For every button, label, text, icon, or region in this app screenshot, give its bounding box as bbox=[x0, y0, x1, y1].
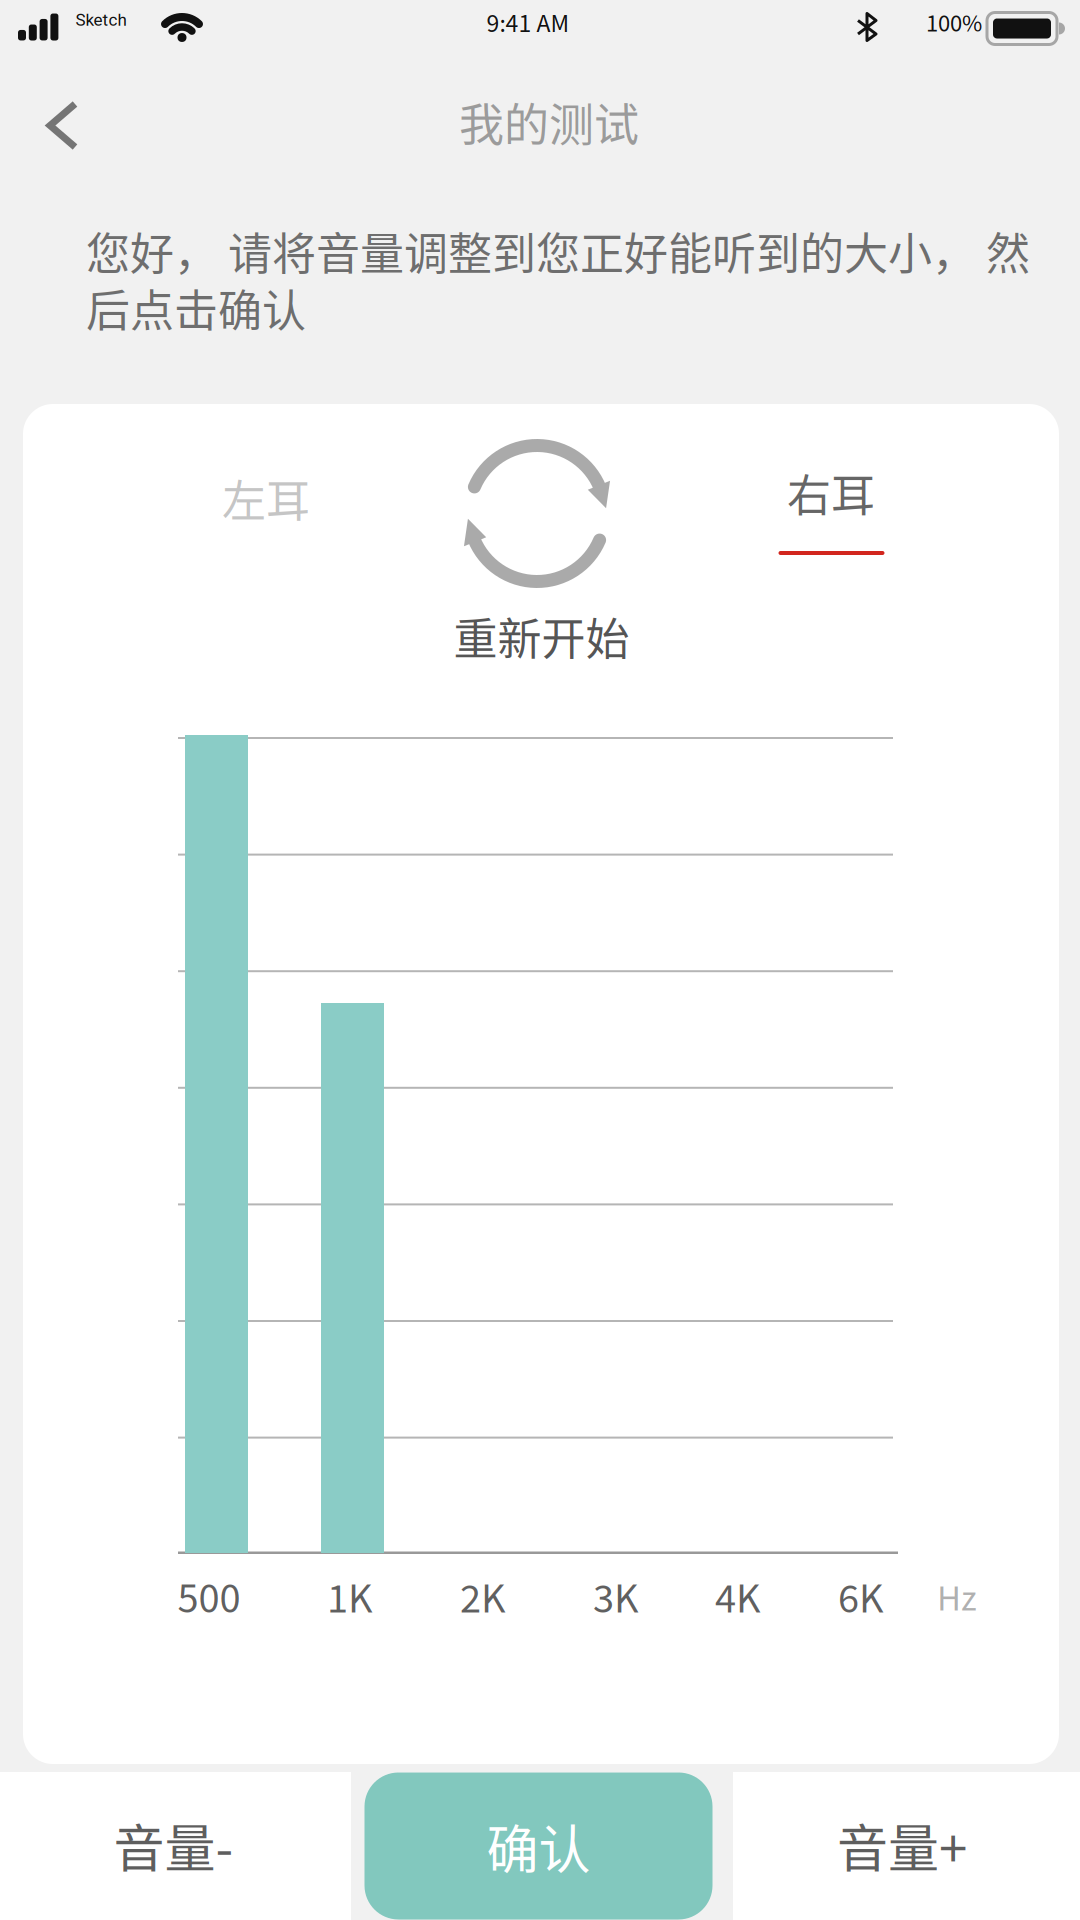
button[interactable]: Back bbox=[30, 94, 94, 158]
staticText: 重新开始 bbox=[453, 604, 629, 668]
staticText: 9:41 AM bbox=[486, 5, 569, 39]
button[interactable]: 音量- bbox=[0, 1771, 349, 1919]
staticText: 3K bbox=[593, 1568, 639, 1623]
button[interactable]: 右耳 bbox=[751, 438, 911, 568]
staticText: 右耳 bbox=[787, 461, 875, 524]
staticText: 1K bbox=[327, 1568, 373, 1623]
staticText: 确认 bbox=[486, 1808, 590, 1884]
staticText: 2K bbox=[460, 1568, 506, 1623]
staticText: 我的测试 bbox=[459, 89, 639, 155]
staticText: 500 bbox=[177, 1568, 240, 1623]
staticText: 左耳 bbox=[222, 466, 310, 530]
button[interactable]: 左耳 bbox=[176, 443, 356, 553]
button[interactable]: 重新开始 bbox=[428, 412, 650, 676]
button[interactable]: 音量+ bbox=[728, 1771, 1075, 1919]
staticText: 后点击确认 bbox=[86, 276, 306, 340]
staticText: 100% bbox=[926, 6, 982, 38]
button[interactable]: 确认 bbox=[364, 1772, 712, 1919]
staticText: Sketch bbox=[75, 10, 126, 30]
staticText: 4K bbox=[715, 1568, 761, 1623]
staticText: Hz bbox=[937, 1572, 977, 1620]
staticText: 音量+ bbox=[837, 1808, 967, 1882]
staticText: 音量- bbox=[113, 1808, 233, 1882]
staticText: 您好， 请将音量调整到您正好能听到的大小， 然 bbox=[86, 219, 1030, 283]
staticText: 6K bbox=[838, 1568, 884, 1623]
